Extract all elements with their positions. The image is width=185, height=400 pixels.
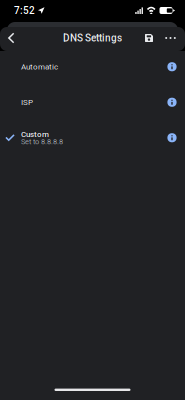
button[interactable]: Save [138,27,160,49]
button[interactable]: ISP [0,84,185,120]
staticText: Set to 8.8.8.8 [21,137,63,146]
staticText: Automatic [21,62,58,71]
button[interactable]: Back [0,27,22,49]
button[interactable]: Automatic [0,49,185,84]
button[interactable]: About Automatic [161,50,183,84]
staticText: ISP [21,98,33,107]
button[interactable]: Custom [0,120,185,155]
button[interactable]: More options [160,27,181,49]
staticText: 7:52 [14,5,35,16]
button[interactable]: About ISP [161,85,183,119]
staticText: Custom [21,130,49,139]
staticText: DNS Settings [63,32,122,44]
button[interactable]: About Custom [161,121,183,155]
